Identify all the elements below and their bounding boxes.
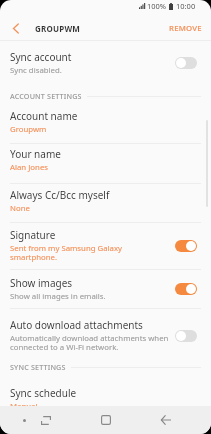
- button[interactable]: Account name: [0, 106, 211, 144]
- staticText: Alan Jones: [10, 162, 49, 173]
- staticText: Automatically download attachments when …: [10, 333, 169, 353]
- staticText: Show images: [10, 276, 73, 290]
- staticText: None: [10, 203, 30, 214]
- staticText: SYNC SETTINGS: [10, 362, 66, 372]
- button[interactable]: Toggle: [175, 283, 197, 295]
- button[interactable]: Toggle: [175, 330, 197, 342]
- staticText: GROUPWM: [35, 23, 81, 34]
- staticText: Auto download attachments: [10, 318, 143, 332]
- button[interactable]: Home: [96, 406, 116, 434]
- staticText: REMOVE: [169, 23, 202, 34]
- staticText: Signature: [10, 228, 56, 242]
- button[interactable]: Navigate up: [0, 18, 32, 38]
- button[interactable]: Toggle: [175, 57, 197, 69]
- button[interactable]: Sync account: [0, 47, 211, 79]
- button[interactable]: Back: [156, 406, 176, 434]
- staticText: Sync account: [10, 50, 72, 64]
- staticText: Always Cc/Bcc myself: [10, 188, 110, 202]
- staticText: Sent from my Samsung Galaxy smartphone.: [10, 243, 123, 263]
- button[interactable]: Hide navigation bar: [14, 406, 34, 434]
- staticText: Groupwm: [10, 124, 47, 135]
- staticText: Manual: [10, 401, 38, 412]
- staticText: Sync schedule: [10, 386, 77, 400]
- staticText: ACCOUNT SETTINGS: [10, 91, 82, 101]
- staticText: 100%: [147, 1, 167, 11]
- staticText: 10:00: [176, 1, 196, 11]
- button[interactable]: Auto download attachments: [0, 315, 211, 356]
- button[interactable]: Toggle: [175, 240, 197, 252]
- button[interactable]: REMOVE: [155, 18, 211, 38]
- button[interactable]: Recent apps: [36, 406, 56, 434]
- button[interactable]: Your name: [0, 144, 211, 182]
- button[interactable]: Show images: [0, 273, 211, 305]
- button[interactable]: Always Cc/Bcc myself: [0, 185, 211, 223]
- staticText: Your name: [10, 147, 61, 161]
- button[interactable]: Sync schedule: [0, 383, 211, 421]
- button[interactable]: Signature: [0, 225, 211, 266]
- staticText: Show all images in emails.: [10, 291, 106, 302]
- staticText: Sync disabled.: [10, 65, 62, 76]
- staticText: Account name: [10, 109, 78, 123]
